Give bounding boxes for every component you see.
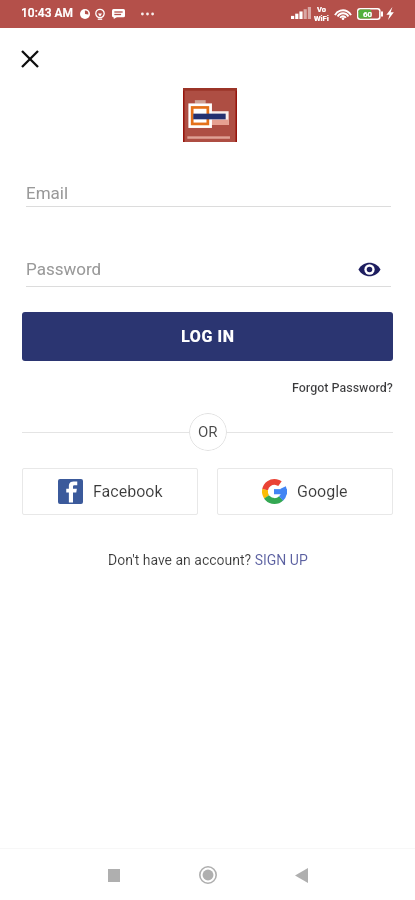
button[interactable]: Forgot Password? xyxy=(280,377,393,397)
button[interactable]: Recents xyxy=(94,855,134,895)
button[interactable]: Back xyxy=(281,855,321,895)
staticText: OR xyxy=(198,423,218,441)
staticText: Google xyxy=(297,482,348,501)
button[interactable]: Facebook xyxy=(22,468,198,515)
staticText: WiFi xyxy=(314,14,329,23)
button[interactable]: Close xyxy=(12,41,48,77)
button[interactable]: LOG IN xyxy=(22,312,393,361)
button[interactable]: Google xyxy=(217,468,393,515)
staticText: Password xyxy=(26,259,102,279)
staticText: 10:43 AM xyxy=(21,6,73,20)
staticText: Don't have an account? SIGN UP xyxy=(108,552,308,568)
staticText: 60 xyxy=(363,10,373,19)
button[interactable]: Don't have an account? SIGN UP xyxy=(108,552,308,568)
staticText: Vo xyxy=(317,5,326,14)
button[interactable]: Show password xyxy=(355,255,383,283)
button[interactable]: Home xyxy=(188,855,228,895)
staticText: Email xyxy=(26,183,69,203)
staticText: Facebook xyxy=(93,482,163,501)
staticText: Forgot Password? xyxy=(292,380,393,395)
staticText: LOG IN xyxy=(181,327,235,346)
